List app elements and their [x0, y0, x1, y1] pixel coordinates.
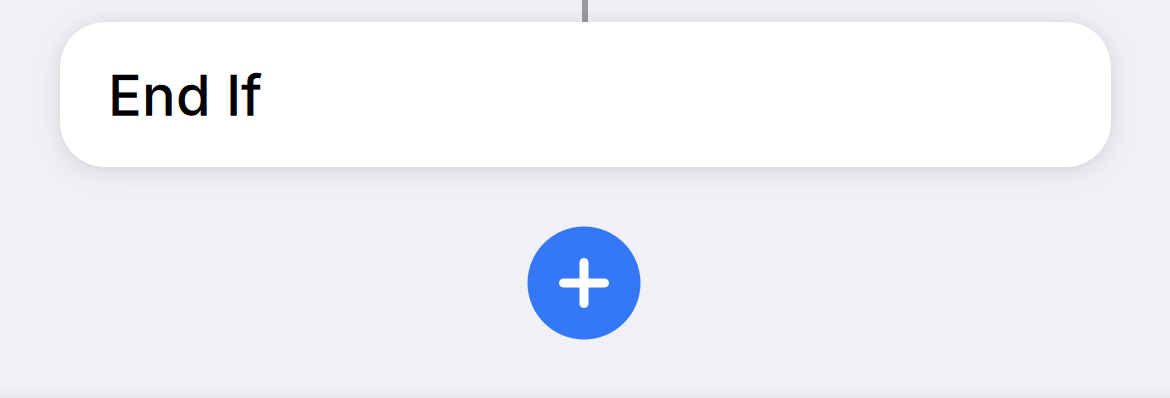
staticText: End If [108, 62, 262, 129]
button[interactable]: Add Action [527, 226, 640, 339]
button[interactable]: End If [60, 22, 1111, 167]
